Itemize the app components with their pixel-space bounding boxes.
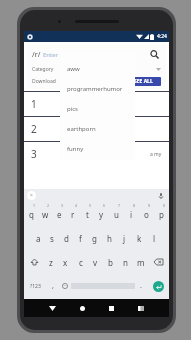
button[interactable]: Category (32, 65, 161, 73)
staticText: t (86, 209, 89, 220)
button[interactable]: 3 (52, 202, 66, 226)
button[interactable]: SEE ALL (125, 77, 161, 86)
staticText: Enter subreddit name here (43, 51, 119, 59)
staticText: 2 (47, 203, 50, 208)
staticText: k (137, 233, 142, 244)
button[interactable]: g (87, 226, 102, 250)
button[interactable]: 5 (80, 202, 94, 226)
button[interactable]: Search (148, 48, 161, 61)
staticText: 3 (61, 203, 64, 208)
staticText: s (50, 233, 54, 244)
staticText: > (30, 192, 33, 199)
staticText: SEE ALL (134, 78, 153, 85)
button[interactable]: 3 (24, 142, 169, 166)
staticText: 7 (118, 203, 121, 208)
button[interactable]: Expand suggestions (27, 191, 36, 200)
button[interactable]: aww (60, 59, 135, 79)
staticText: d (64, 233, 69, 244)
button[interactable]: n (118, 250, 133, 274)
staticText: j (123, 233, 126, 244)
staticText: 4:24 (157, 33, 167, 40)
staticText: 6 (103, 203, 106, 208)
staticText: a (36, 233, 41, 244)
button[interactable]: ?123 (24, 274, 47, 298)
button[interactable]: 8 (124, 202, 139, 226)
button[interactable]: Back (44, 300, 60, 316)
staticText: 9 (148, 203, 151, 208)
staticText: 8 (133, 203, 136, 208)
button[interactable]: Voice input (157, 192, 165, 200)
button[interactable]: Recents (103, 300, 119, 316)
button[interactable]: 6 (94, 202, 109, 226)
button[interactable]: j (117, 226, 132, 250)
staticText: 5 (89, 203, 92, 208)
staticText: g (92, 233, 97, 244)
button[interactable]: Space (71, 278, 135, 294)
staticText: w (42, 209, 49, 220)
staticText: pics (67, 105, 78, 113)
button[interactable]: earthporn (60, 119, 135, 139)
button[interactable]: funny (60, 139, 135, 159)
staticText: n (123, 257, 128, 268)
button[interactable]: f (73, 226, 87, 250)
staticText: b (108, 257, 113, 268)
button[interactable]: a (31, 226, 45, 250)
staticText: h (107, 233, 112, 244)
button[interactable]: x (58, 250, 73, 274)
staticText: a my (150, 151, 162, 158)
button[interactable]: 9 (139, 202, 154, 226)
staticText: x (63, 257, 68, 268)
staticText: . (140, 281, 142, 291)
button[interactable]: Shift (24, 250, 44, 274)
button[interactable]: Home (74, 300, 90, 316)
button[interactable]: 2 (38, 202, 52, 226)
staticText: 3 (31, 147, 37, 161)
button[interactable]: 1 (24, 202, 38, 226)
button[interactable]: 0 (154, 202, 169, 226)
staticText: aww (67, 65, 80, 73)
button[interactable]: Backspace (148, 250, 169, 274)
button[interactable]: h (102, 226, 117, 250)
staticText: e (57, 209, 62, 220)
button[interactable]: 2 (24, 117, 169, 141)
button[interactable]: z (44, 250, 58, 274)
button[interactable]: c (73, 250, 88, 274)
staticText: i (130, 209, 133, 220)
button[interactable]: 1 (24, 92, 169, 116)
button[interactable]: v (88, 250, 103, 274)
button[interactable]: k (132, 226, 147, 250)
button[interactable]: m (133, 250, 148, 274)
staticText: z (49, 257, 53, 268)
staticText: programmerhumor (67, 85, 123, 93)
button[interactable]: . (135, 274, 147, 298)
staticText: 4 (75, 203, 78, 208)
button[interactable]: 4 (66, 202, 80, 226)
staticText: p (159, 209, 164, 220)
staticText: v (93, 257, 98, 268)
staticText: u (114, 209, 119, 220)
button[interactable]: Screenshot (133, 300, 149, 316)
button[interactable]: programmerhumor (60, 79, 135, 99)
staticText: 0 (163, 203, 166, 208)
staticText: o (144, 209, 149, 220)
button[interactable]: d (59, 226, 73, 250)
button[interactable]: , (47, 274, 59, 298)
button[interactable]: Enter (149, 276, 167, 296)
button[interactable]: l (147, 226, 162, 250)
staticText: 2 (31, 122, 37, 136)
button[interactable]: Emoji (59, 274, 71, 298)
button[interactable]: b (103, 250, 118, 274)
staticText: 1 (31, 97, 37, 111)
staticText: l (153, 233, 156, 244)
staticText: r (71, 209, 75, 220)
button[interactable]: 7 (109, 202, 124, 226)
button[interactable]: s (45, 226, 59, 250)
staticText: m (137, 257, 145, 268)
staticText: q (29, 209, 34, 220)
staticText: y (99, 209, 104, 220)
staticText: /r/ (32, 50, 41, 60)
staticText: 1 (33, 203, 36, 208)
button[interactable]: /r/ (32, 48, 161, 61)
staticText: f (79, 233, 82, 244)
button[interactable]: pics (60, 99, 135, 119)
